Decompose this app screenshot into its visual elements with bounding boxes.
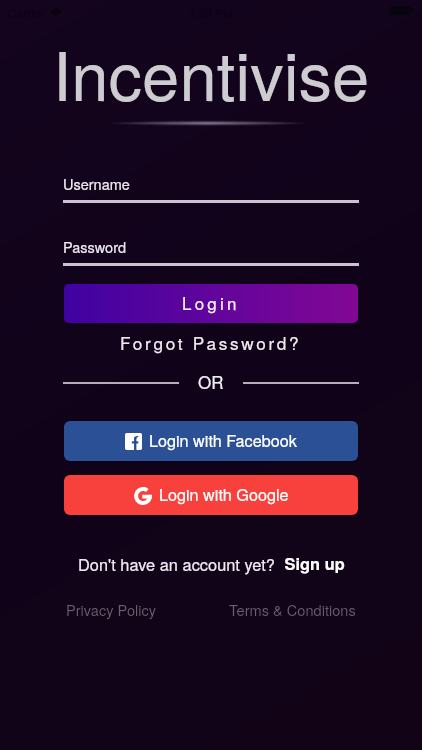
staticText: Terms & Conditions <box>229 599 356 620</box>
staticText: Login <box>182 290 240 314</box>
staticText: Login with Google <box>159 482 289 505</box>
button[interactable]: Login with Google <box>64 475 358 515</box>
staticText: Privacy Policy <box>66 599 157 620</box>
staticText: Don't have an account yet? <box>78 552 280 575</box>
button[interactable]: Terms & Conditions <box>229 599 356 620</box>
staticText: Password <box>63 236 127 257</box>
button[interactable]: Login with Facebook <box>64 421 358 461</box>
staticText: Username <box>63 173 130 194</box>
button[interactable]: Forgot Password? <box>0 330 422 355</box>
button[interactable]: Sign up <box>280 552 345 575</box>
staticText: Forgot Password? <box>120 330 302 355</box>
button[interactable]: Username <box>63 173 359 203</box>
staticText: Login with Facebook <box>149 428 297 451</box>
staticText: Carrier <box>8 4 45 21</box>
staticText: Sign up <box>280 552 345 575</box>
button[interactable]: Password <box>63 236 359 266</box>
button[interactable]: Privacy Policy <box>66 599 157 620</box>
button[interactable]: Login <box>64 284 358 323</box>
staticText: Incentivise <box>0 24 422 120</box>
staticText: OR <box>198 369 224 389</box>
